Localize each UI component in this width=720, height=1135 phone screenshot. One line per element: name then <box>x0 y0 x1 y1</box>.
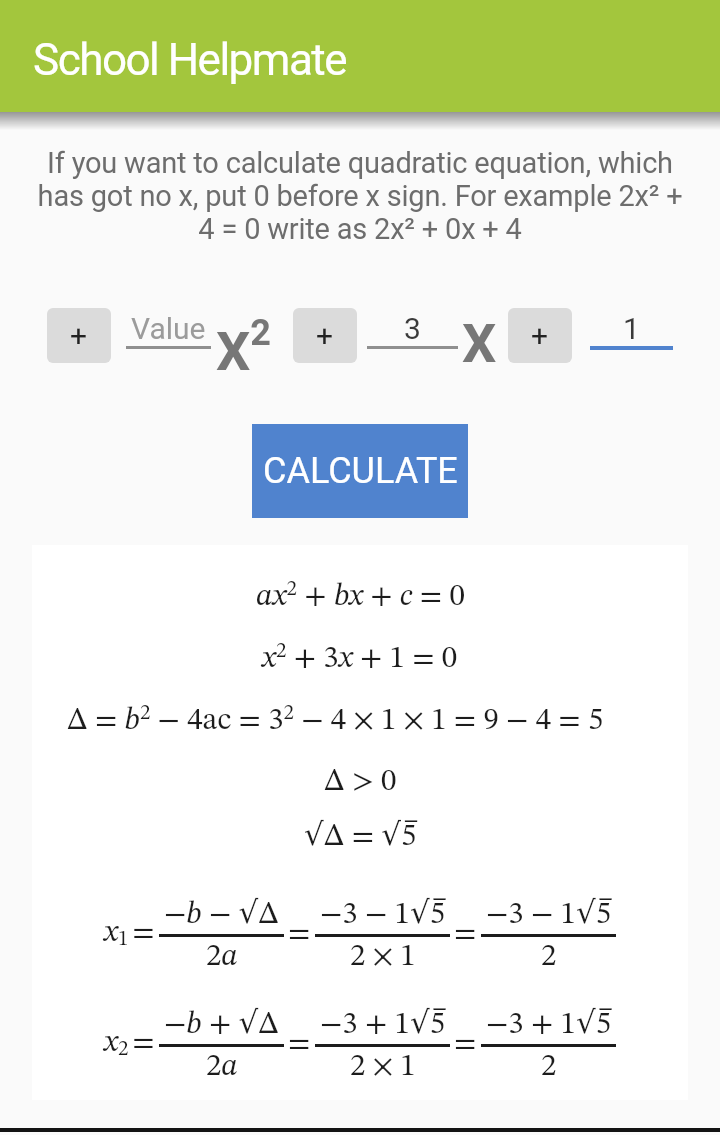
staticText: −3 + 1√5̅ <box>486 1004 611 1040</box>
staticText: = <box>450 918 481 949</box>
staticText: School Helpmate <box>33 34 347 86</box>
button[interactable]: 1 <box>590 311 673 350</box>
staticText: √Δ = √5̅ <box>304 816 417 852</box>
staticText: −3 + 1√5̅ <box>320 1004 445 1040</box>
staticText: 1 <box>623 311 640 346</box>
staticText: x2 = <box>104 1027 159 1060</box>
staticText: CALCULATE <box>263 450 458 492</box>
staticText: + <box>531 318 549 353</box>
staticText: = <box>284 918 315 949</box>
staticText: + <box>316 318 334 353</box>
staticText: If you want to calculate quadratic equat… <box>10 146 710 246</box>
staticText: −b + √Δ <box>164 1004 279 1040</box>
staticText: 3 <box>404 311 421 346</box>
staticText: 2 × 1 <box>350 941 416 972</box>
staticText: 2 <box>541 1051 557 1082</box>
staticText: ax2 + bx + c = 0 <box>256 579 465 613</box>
button[interactable]: 3 <box>367 311 458 349</box>
staticText: 2a <box>206 941 238 972</box>
staticText: X <box>462 312 497 375</box>
staticText: Value <box>131 311 206 346</box>
staticText: 2a <box>206 1051 238 1082</box>
button[interactable]: + <box>47 308 111 363</box>
staticText: −3 − 1√5̅ <box>486 894 611 930</box>
staticText: = <box>284 1028 315 1059</box>
staticText: x1 = <box>104 917 159 950</box>
staticText: Δ > 0 <box>324 766 397 797</box>
staticText: Δ = b2 − 4ac = 32 − 4 × 1 × 1 = 9 − 4 = … <box>67 703 604 737</box>
button[interactable]: + <box>293 308 357 363</box>
staticText: 2 × 1 <box>350 1051 416 1082</box>
staticText: = <box>450 1028 481 1059</box>
staticText: x2 + 3x + 1 = 0 <box>262 641 458 675</box>
button[interactable]: Value <box>126 311 211 349</box>
staticText: + <box>70 318 88 353</box>
button[interactable]: CALCULATE <box>252 424 468 518</box>
button[interactable]: + <box>508 308 572 363</box>
staticText: 2 <box>541 941 557 972</box>
staticText: −b − √Δ <box>164 894 279 930</box>
staticText: −3 − 1√5̅ <box>320 894 445 930</box>
staticText: X2 <box>216 312 271 384</box>
